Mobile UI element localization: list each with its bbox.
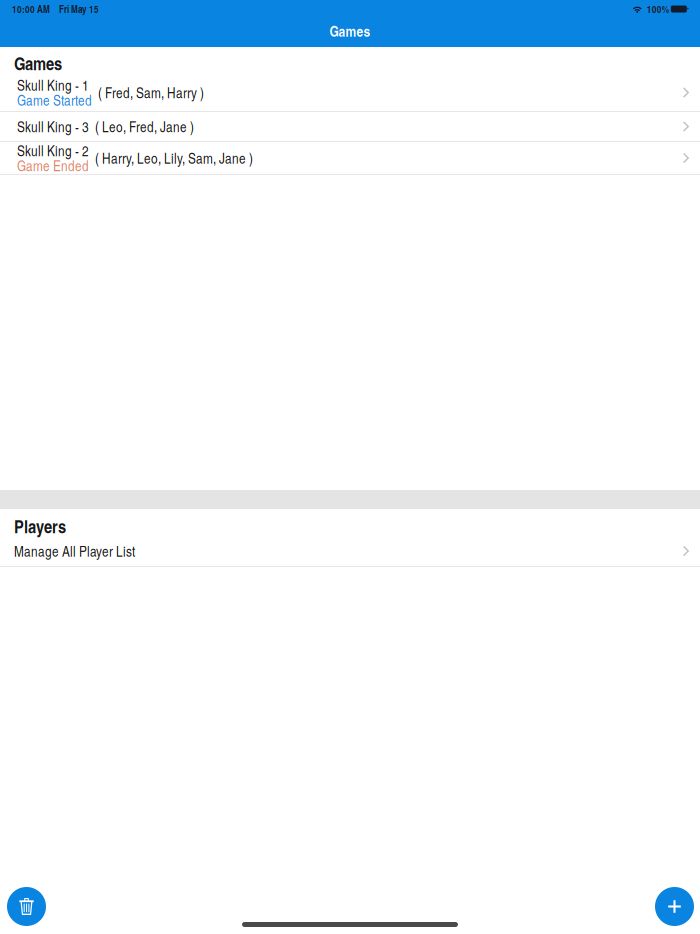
staticText: Game Ended [17,156,89,175]
staticText: ( Harry, Leo, Lily, Sam, Jane ) [95,148,253,168]
button[interactable]: Skull King - 2 [0,142,700,174]
staticText: Game Started [17,90,92,110]
staticText: Skull King - 2 [17,141,89,160]
button[interactable]: Add game [655,887,694,926]
button[interactable]: Delete game [7,887,46,926]
staticText: Skull King - 3 [17,117,89,136]
staticText: Fri May 15 [59,2,99,16]
staticText: Games [14,50,62,76]
staticText: Players [14,513,66,539]
staticText: 100% [647,2,669,16]
staticText: ( Fred, Sam, Harry ) [98,83,204,102]
staticText: Skull King - 1 [17,75,89,95]
button[interactable]: Manage All Player List [0,536,700,566]
staticText: ( Leo, Fred, Jane ) [95,117,194,136]
staticText: 10:00 AM [12,2,50,16]
staticText: Manage All Player List [14,541,135,561]
button[interactable]: Skull King - 1 [0,74,700,111]
button[interactable]: Skull King - 3 [0,112,700,141]
staticText: Games [329,21,370,41]
